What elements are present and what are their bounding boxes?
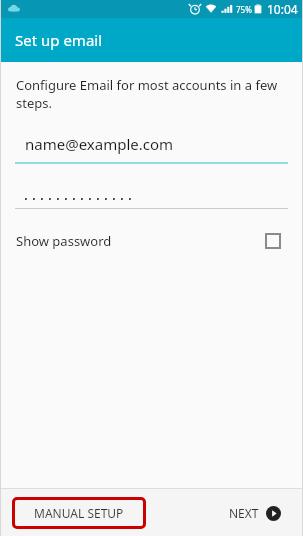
other: Next: [266, 506, 281, 521]
staticText: 75%: [236, 4, 252, 15]
staticText: MANUAL SETUP: [34, 505, 124, 521]
staticText: Configure Email for most accounts in a f…: [16, 76, 287, 112]
button[interactable]: MANUAL SETUP: [12, 497, 146, 529]
staticText: Show password: [16, 232, 112, 250]
staticText: NEXT: [229, 505, 259, 521]
button[interactable]: NEXT: [229, 505, 281, 521]
staticText: 10:04: [267, 1, 298, 17]
staticText: name@example.com: [25, 134, 174, 154]
button[interactable]: name@example.com: [15, 134, 288, 164]
button[interactable]: [15, 188, 288, 209]
button[interactable]: Show password: [0, 225, 303, 257]
staticText: Set up email: [15, 30, 103, 50]
